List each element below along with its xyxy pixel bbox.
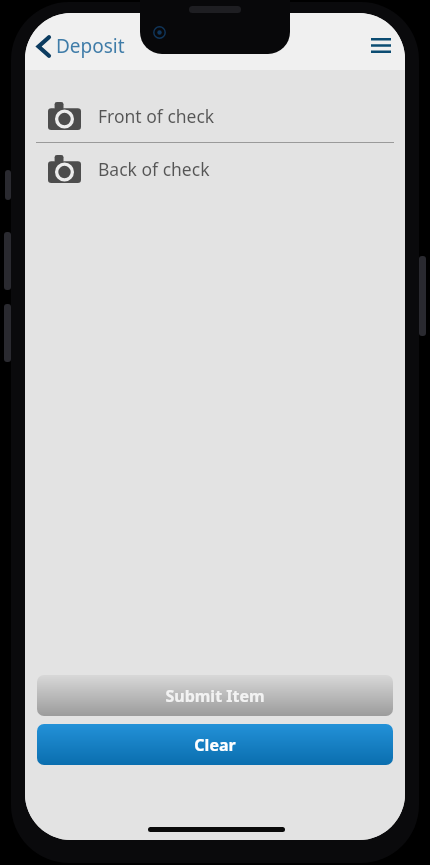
button[interactable]: Clear	[37, 724, 393, 765]
button[interactable]: Deposit	[25, 29, 139, 63]
button[interactable]: Menu	[357, 28, 405, 63]
staticText: Clear	[194, 734, 236, 756]
staticText: Deposit	[56, 33, 125, 59]
staticText: Front of check	[98, 104, 215, 128]
button[interactable]: Back of check	[25, 143, 405, 195]
button[interactable]: Front of check	[25, 90, 405, 142]
staticText: Back of check	[98, 157, 210, 181]
staticText: Submit Item	[165, 685, 265, 707]
button[interactable]: Submit Item	[37, 675, 393, 716]
